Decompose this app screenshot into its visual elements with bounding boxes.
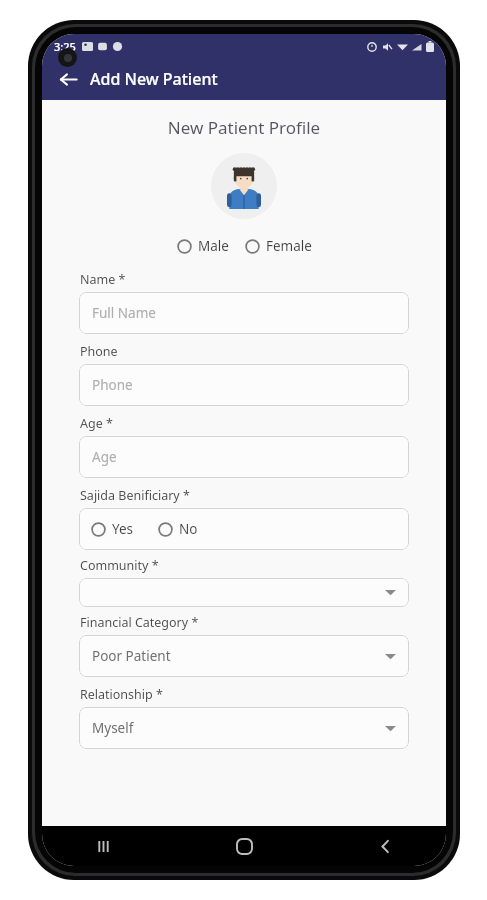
staticText: Age: [92, 448, 117, 466]
button[interactable]: Recents: [86, 829, 120, 863]
staticText: Phone: [80, 343, 118, 360]
staticText: 3:25: [54, 39, 76, 54]
staticText: Add New Patient: [90, 68, 218, 90]
button[interactable]: Full Name: [79, 292, 409, 334]
staticText: Sajida Benificiary *: [80, 487, 190, 504]
button[interactable]: Back: [50, 61, 86, 97]
staticText: Poor Patient: [92, 647, 171, 665]
staticText: Yes: [112, 520, 134, 538]
button[interactable]: [79, 578, 409, 607]
button[interactable]: Poor Patient: [79, 635, 409, 677]
staticText: New Patient Profile: [42, 116, 446, 139]
button[interactable]: Female: [243, 233, 314, 259]
staticText: Financial Category *: [80, 614, 199, 631]
button[interactable]: Yes: [89, 516, 136, 542]
button[interactable]: Male: [175, 233, 231, 259]
staticText: Phone: [92, 376, 133, 394]
staticText: No: [179, 520, 198, 538]
staticText: Age *: [80, 415, 113, 432]
staticText: Community *: [80, 557, 159, 574]
button[interactable]: Myself: [79, 707, 409, 749]
button[interactable]: Home: [227, 829, 261, 863]
button[interactable]: Phone: [79, 364, 409, 406]
staticText: Full Name: [92, 304, 156, 322]
button[interactable]: Age: [79, 436, 409, 478]
button[interactable]: No: [156, 516, 200, 542]
staticText: Name *: [80, 271, 126, 288]
staticText: Myself: [92, 719, 134, 737]
staticText: Male: [198, 237, 229, 255]
staticText: Relationship *: [80, 686, 163, 703]
button[interactable]: Back: [368, 829, 402, 863]
staticText: Female: [266, 237, 312, 255]
